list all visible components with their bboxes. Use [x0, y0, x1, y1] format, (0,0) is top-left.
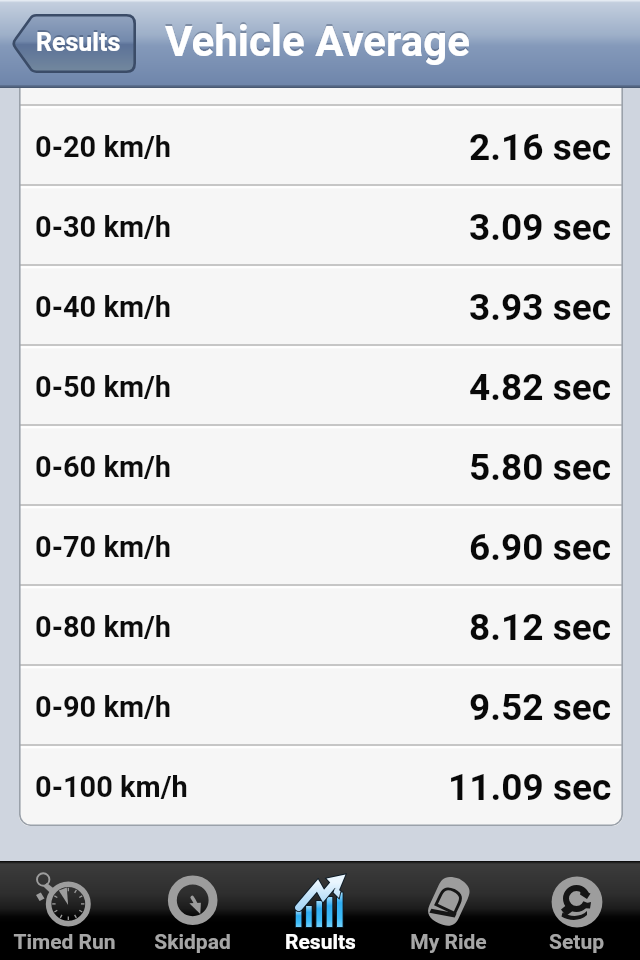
staticText: Setup [549, 930, 604, 955]
button[interactable]: 0-90 km/h [19, 665, 623, 745]
button[interactable]: 0-70 km/h [19, 505, 623, 585]
staticText: Skidpad [154, 930, 231, 955]
button[interactable]: 0-30 km/h [19, 185, 623, 265]
staticText: 0-40 km/h [35, 290, 172, 324]
button[interactable]: 0-20 km/h [19, 105, 623, 185]
staticText: 3.09 sec [469, 206, 612, 249]
staticText: 6.90 sec [469, 526, 612, 569]
button[interactable]: Results [256, 861, 384, 960]
staticText: 0-50 km/h [35, 370, 172, 404]
staticText: 0-70 km/h [35, 530, 172, 564]
button[interactable]: 0-40 km/h [19, 265, 623, 345]
button[interactable]: My Ride [384, 861, 512, 960]
button[interactable]: 0-50 km/h [19, 345, 623, 425]
staticText: Vehicle Average [165, 15, 471, 64]
staticText: Timed Run [13, 930, 116, 955]
staticText: 9.52 sec [469, 686, 612, 729]
staticText: 0-100 km/h [35, 770, 188, 804]
button[interactable]: Setup [512, 861, 640, 960]
staticText: 4.82 sec [469, 366, 612, 409]
staticText: 0-80 km/h [35, 610, 172, 644]
staticText: 3.93 sec [469, 286, 612, 329]
button[interactable]: 0-60 km/h [19, 425, 623, 505]
staticText: 2.16 sec [469, 126, 612, 169]
staticText: 0-60 km/h [35, 450, 172, 484]
staticText: 0-90 km/h [35, 690, 172, 724]
button[interactable]: Skidpad [128, 861, 256, 960]
button[interactable]: 0-80 km/h [19, 585, 623, 665]
button[interactable]: Timed Run [0, 861, 128, 960]
staticText: Results [36, 28, 121, 57]
staticText: 8.12 sec [469, 606, 612, 649]
staticText: 11.09 sec [448, 766, 612, 809]
staticText: 5.80 sec [469, 446, 612, 489]
staticText: My Ride [410, 930, 487, 955]
button[interactable]: Back to Results [11, 14, 136, 73]
staticText: Vehicle Average [165, 17, 471, 66]
staticText: 0-20 km/h [35, 130, 172, 164]
staticText: 0-30 km/h [35, 210, 172, 244]
staticText: Results [36, 26, 121, 55]
button[interactable]: 0-100 km/h [19, 745, 623, 825]
staticText: Results [285, 930, 356, 955]
